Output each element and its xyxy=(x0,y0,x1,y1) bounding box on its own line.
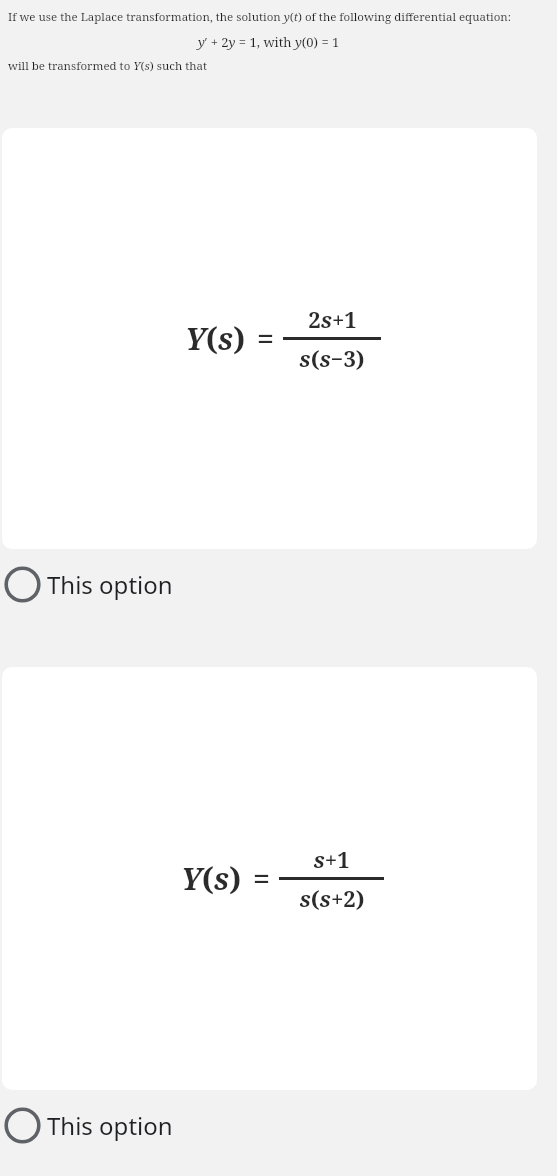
staticText: Y(s) xyxy=(185,318,246,359)
staticText: will be transformed to Y(s) such that xyxy=(8,58,208,74)
staticText: This option xyxy=(47,1109,173,1142)
button[interactable]: Y(s) xyxy=(2,128,537,549)
staticText: = xyxy=(253,858,270,899)
staticText: 2s+1 xyxy=(308,304,357,334)
button[interactable]: Y(s) xyxy=(2,667,537,1090)
staticText: Y(s) xyxy=(181,858,242,899)
staticText: y′ + 2y = 1, with y(0) = 1 xyxy=(198,33,340,51)
button[interactable]: This option xyxy=(0,1090,557,1160)
staticText: s(s−3) xyxy=(299,343,365,373)
staticText: = xyxy=(257,318,274,359)
staticText: s(s+2) xyxy=(299,883,365,913)
staticText: s+1 xyxy=(313,844,350,874)
button[interactable]: This option xyxy=(0,549,557,619)
staticText: If we use the Laplace transformation, th… xyxy=(8,9,512,25)
staticText: This option xyxy=(47,568,173,601)
